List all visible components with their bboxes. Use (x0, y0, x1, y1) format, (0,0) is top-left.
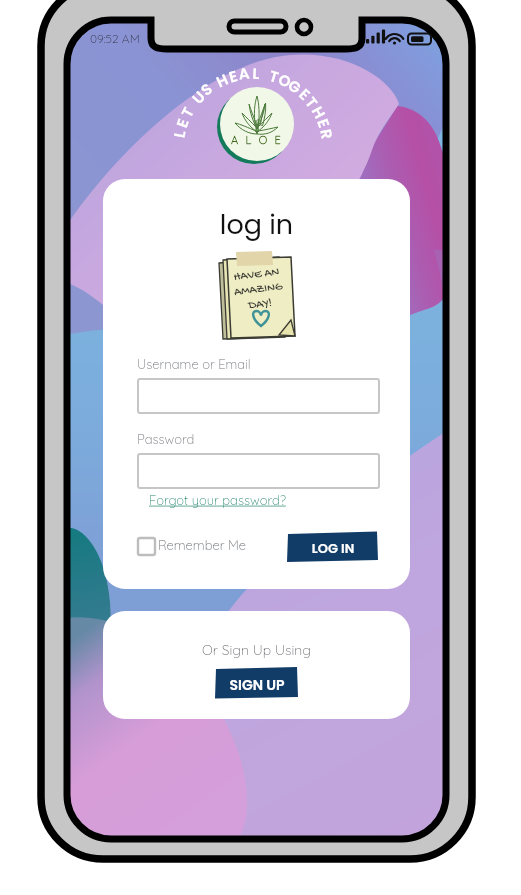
staticText: Username or Email (137, 356, 251, 372)
staticText: U (184, 83, 212, 111)
staticText: Remember Me (158, 537, 246, 553)
staticText: Password (137, 431, 195, 447)
staticText: T (262, 64, 286, 88)
staticText: L (246, 63, 266, 83)
staticText: A (233, 62, 255, 84)
staticText: Forgot your password? (149, 492, 286, 508)
staticText: T (298, 88, 326, 116)
staticText: H (209, 67, 235, 93)
button[interactable] (136, 535, 251, 558)
staticText: L (167, 122, 191, 146)
staticText: S (192, 75, 220, 103)
staticText: log in (103, 206, 410, 246)
staticText: G (281, 72, 309, 100)
staticText: HAVE AN AMAZING DAY! (225, 264, 293, 326)
button[interactable]: SIGN UP (215, 667, 299, 699)
button[interactable]: LOG IN (287, 531, 379, 562)
staticText: LOG IN (287, 539, 379, 559)
staticText: A L O E (227, 133, 287, 151)
staticText: 09:52 AM (90, 31, 140, 46)
staticText: H (305, 98, 332, 125)
staticText: E (221, 64, 245, 88)
staticText: E (311, 110, 337, 136)
staticText: E (291, 80, 319, 108)
staticText: R (315, 122, 339, 146)
staticText: T (173, 98, 200, 125)
staticText: E (169, 110, 195, 136)
staticText: SIGN UP (215, 675, 299, 695)
staticText: O (272, 67, 298, 93)
staticText: Or Sign Up Using (103, 641, 410, 661)
button[interactable]: Forgot your password? (149, 492, 286, 508)
